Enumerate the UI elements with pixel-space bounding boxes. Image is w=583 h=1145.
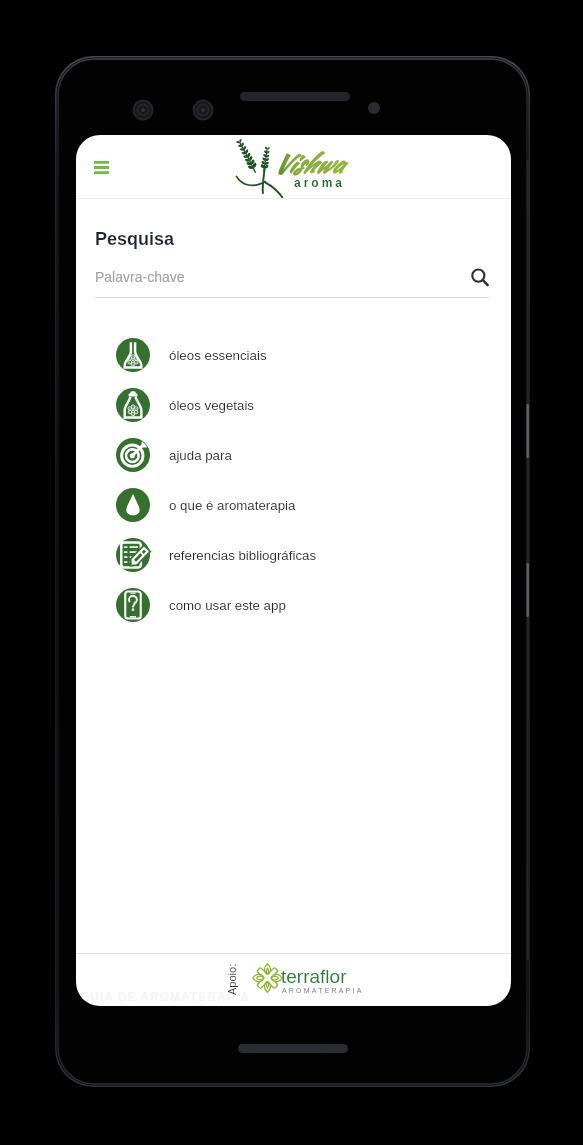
staticText: AROMATERAPIA bbox=[282, 987, 364, 995]
staticText: Apoio: bbox=[226, 963, 238, 995]
staticText: óleos essenciais bbox=[169, 348, 267, 363]
staticText: GUIA DE AROMATERAPIA bbox=[80, 990, 250, 1003]
staticText: referencias bibliográficas bbox=[169, 548, 317, 563]
button[interactable]: óleos vegetais bbox=[76, 380, 511, 430]
button[interactable]: o que é aromaterapia bbox=[76, 480, 511, 530]
button[interactable]: como usar este app bbox=[76, 580, 511, 630]
staticText: Pesquisa bbox=[95, 229, 175, 249]
other: Pesquisar bbox=[470, 268, 489, 287]
staticText: ajuda para bbox=[169, 448, 232, 463]
button[interactable]: ajuda para bbox=[76, 430, 511, 480]
staticText: aroma bbox=[294, 176, 346, 189]
button[interactable]: óleos essenciais bbox=[76, 330, 511, 380]
button[interactable]: Palavra-chave bbox=[95, 266, 489, 288]
staticText: terraflor bbox=[281, 966, 347, 987]
button[interactable]: referencias bibliográficas bbox=[76, 530, 511, 580]
button[interactable]: Menu bbox=[81, 147, 121, 187]
staticText: óleos vegetais bbox=[169, 398, 255, 413]
staticText: o que é aromaterapia bbox=[169, 498, 296, 513]
staticText: Palavra-chave bbox=[95, 269, 470, 285]
staticText: Vishwa bbox=[272, 146, 342, 182]
staticText: como usar este app bbox=[169, 598, 286, 613]
staticText: GUIA DE AROMATERAPIA bbox=[204, 990, 384, 1003]
